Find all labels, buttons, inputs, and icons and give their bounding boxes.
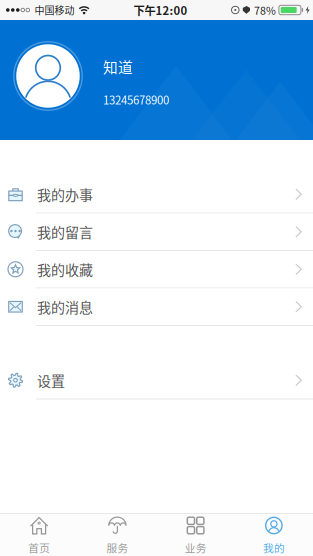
button[interactable]: 我的办事	[0, 176, 313, 213]
button[interactable]: 首页	[0, 514, 78, 556]
staticText: 我的	[263, 540, 285, 555]
staticText: 设置	[37, 370, 65, 390]
staticText: 首页	[28, 540, 50, 555]
button[interactable]: 我的留言	[0, 213, 313, 251]
staticText: 我的留言	[37, 222, 93, 242]
staticText: 业务	[185, 540, 207, 555]
staticText: 知道	[103, 56, 133, 77]
button[interactable]: 业务	[156, 514, 235, 556]
button[interactable]: 我的消息	[0, 288, 313, 326]
staticText: 78%	[254, 2, 276, 18]
staticText: 13245678900	[103, 91, 169, 108]
staticText: 我的收藏	[37, 259, 93, 279]
staticText: 中国移动	[35, 3, 75, 17]
button[interactable]: 服务	[78, 514, 156, 556]
button[interactable]: 我的	[235, 514, 313, 556]
staticText: 服务	[106, 540, 128, 555]
staticText: 我的消息	[37, 297, 93, 317]
button[interactable]: 设置	[0, 362, 313, 399]
staticText: 我的办事	[37, 184, 93, 204]
button[interactable]: 我的收藏	[0, 251, 313, 288]
staticText: 下午12:00	[133, 2, 187, 18]
